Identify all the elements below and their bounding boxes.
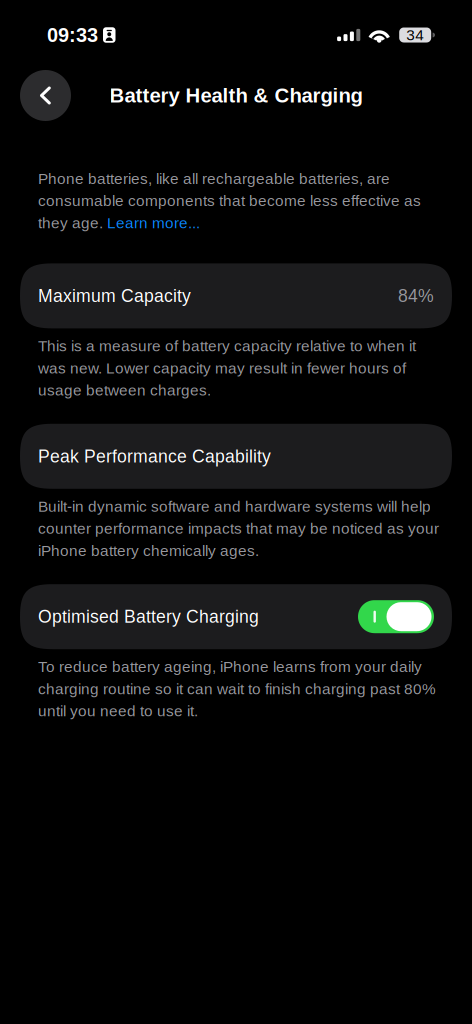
staticText: This is a measure of battery capacity re… [38,337,416,399]
staticText: Peak Performance Capability [38,446,271,466]
staticText: 09:33 [47,24,98,46]
staticText: Maximum Capacity [38,286,191,306]
staticText: Optimised Battery Charging [38,607,259,626]
button[interactable]: Optimised Battery Charging [20,584,452,649]
staticText: Battery Health & Charging [109,84,362,107]
staticText: Built-in dynamic software and hardware s… [38,498,439,559]
staticText: 84% [398,286,434,306]
staticText: To reduce battery ageing, iPhone learns … [38,658,436,720]
button[interactable]: Maximum Capacity [20,263,452,328]
staticText: 34 [406,26,424,43]
button[interactable]: Optimised Battery Charging, on [358,600,434,633]
button[interactable]: Back [20,70,71,121]
button[interactable]: Peak Performance Capability [20,424,452,489]
staticText: Phone batteries, like all rechargeable b… [38,170,421,231]
